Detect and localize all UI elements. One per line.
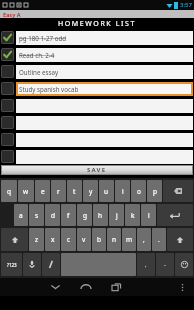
button[interactable]: m [122,228,136,251]
staticText: Study spanish vocab [19,85,79,93]
staticText: h [98,211,103,220]
staticText: l [148,211,150,220]
button[interactable]: dash [156,253,174,276]
button[interactable]: v [77,228,91,251]
button[interactable]: Emoji [175,253,193,276]
staticText: z [35,235,39,244]
staticText: Read ch. 2-4 [19,51,55,59]
button[interactable]: Toggle done [0,97,194,114]
button[interactable]: , [137,228,151,251]
staticText: , [143,235,145,244]
button[interactable]: t [67,180,82,202]
button[interactable]: Toggle done [0,29,194,46]
button[interactable]: d [45,204,60,226]
button[interactable]: Handwriting [42,253,60,276]
staticText: p [153,187,157,196]
staticText: pg 180 1-27 odd [19,34,67,42]
button[interactable]: k [125,204,140,226]
staticText: n [112,235,117,244]
button[interactable]: u [99,180,114,202]
button[interactable]: Toggle done [0,148,194,165]
button[interactable]: Voice input [23,253,41,276]
button[interactable]: Back [40,278,71,296]
staticText: u [104,187,109,196]
staticText: g [83,211,87,220]
staticText: b [97,235,101,244]
button[interactable]: Delete [163,180,193,202]
staticText: - [164,261,166,269]
button[interactable]: Toggle done [1,150,14,163]
button[interactable]: q [1,180,17,202]
staticText: s [35,211,39,220]
button[interactable]: e [35,180,50,202]
button[interactable]: g [77,204,92,226]
staticText: x [51,235,55,244]
staticText: m [126,235,133,244]
button[interactable]: Toggle done [1,31,14,44]
button[interactable]: Read ch. 2-4 [16,48,193,62]
button[interactable]: z [29,228,44,251]
button[interactable]: Enter [157,204,193,226]
staticText: w [23,187,29,196]
button[interactable]: Home [71,278,101,296]
staticText: Easy A [3,11,21,18]
button[interactable]: Toggle done [1,133,14,146]
button[interactable]: Toggle done [0,46,194,63]
staticText: c [67,235,71,244]
staticText: e [41,187,45,196]
staticText: Outline essay [19,68,59,76]
staticText: f [67,211,70,220]
button[interactable]: a [14,204,28,226]
staticText: HOMEWORK LIST [58,19,136,29]
button[interactable]: Toggle done [1,82,14,95]
button[interactable]: Toggle done [1,65,14,78]
button[interactable]: SAVE [1,165,193,175]
staticText: d [51,211,55,220]
button[interactable]: n [107,228,121,251]
button[interactable]: p [147,180,162,202]
staticText: a [19,211,23,220]
button[interactable]: y [83,180,98,202]
staticText: SAVE [87,166,107,174]
button[interactable]: Study spanish vocab [16,82,193,96]
button[interactable]: dot [137,253,155,276]
button[interactable]: b [92,228,106,251]
button[interactable]: i [115,180,130,202]
button[interactable]: Toggle done [1,99,14,112]
button[interactable]: w [18,180,34,202]
button[interactable]: Toggle done [0,63,194,80]
button[interactable]: h [93,204,108,226]
button[interactable]: Shift [167,228,193,251]
button[interactable]: Outline essay [16,65,193,79]
button[interactable]: Toggle done [0,131,194,148]
staticText: y [89,187,93,196]
button[interactable]: pg 180 1-27 odd [16,31,193,45]
staticText: j [116,211,118,220]
staticText: q [7,187,11,196]
button[interactable]: More options [170,278,194,296]
button[interactable]: Recent apps [101,278,131,296]
button[interactable]: Toggle done [1,48,14,61]
staticText: k [131,211,135,220]
button[interactable]: ?123 [1,253,22,276]
button[interactable]: x [45,228,60,251]
button[interactable]: Toggle done [0,114,194,131]
button[interactable]: l [141,204,156,226]
staticText: 3:57 [180,1,192,9]
button[interactable]: r [51,180,66,202]
staticText: t [73,187,76,196]
button[interactable]: Shift [1,228,28,251]
button[interactable]: j [109,204,124,226]
button[interactable]: . [152,228,166,251]
button[interactable]: c [61,228,76,251]
button[interactable]: Toggle done [0,80,194,97]
button[interactable]: o [131,180,146,202]
button[interactable]: f [61,204,76,226]
button[interactable]: s [29,204,44,226]
button[interactable]: Toggle done [1,116,14,129]
